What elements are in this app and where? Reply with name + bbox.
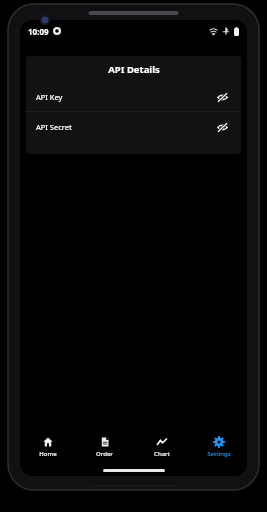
button[interactable]: Show API Key [213, 88, 231, 106]
staticText: API Key [36, 92, 63, 102]
staticText: API Details [108, 63, 160, 76]
staticText: Order [96, 450, 113, 458]
staticText: 10:09 [28, 26, 49, 37]
button[interactable]: API Secret [26, 112, 241, 141]
button[interactable]: Home [20, 430, 76, 464]
button[interactable]: API Key [26, 82, 241, 111]
staticText: API Secret [36, 122, 72, 132]
button[interactable]: Show API Secret [213, 118, 231, 136]
staticText: Home [39, 450, 57, 458]
staticText: Settings [207, 450, 231, 458]
button[interactable]: Settings [190, 430, 247, 464]
staticText: Chart [154, 450, 170, 458]
button[interactable]: Chart [133, 430, 190, 464]
button[interactable]: Order [76, 430, 133, 464]
